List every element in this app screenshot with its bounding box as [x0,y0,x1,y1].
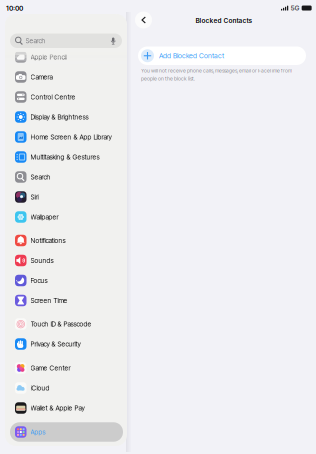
button[interactable]: Wallet & Apple Pay [10,398,123,418]
button[interactable]: Game Center [10,358,123,378]
staticText: Game Center [30,364,70,372]
button[interactable]: Screen Time [10,291,123,310]
staticText: Display & Brightness [30,113,88,121]
staticText: 5G [290,4,299,12]
button[interactable]: Apple Pencil [10,47,123,67]
button[interactable]: Search [10,33,122,48]
staticText: people on the block list. [141,75,195,82]
staticText: Notifications [30,236,65,245]
staticText: Focus [30,276,47,285]
staticText: Wallpaper [30,213,58,221]
staticText: Add Blocked Contact [159,52,224,60]
staticText: Control Centre [30,93,75,101]
button[interactable]: Display & Brightness [10,107,123,127]
staticText: Apps [30,428,45,436]
staticText: Camera [30,73,52,81]
button[interactable]: Search [10,167,123,187]
staticText: Screen Time [30,296,67,305]
button[interactable]: Focus [10,271,123,290]
button[interactable]: Camera [10,67,123,87]
staticText: iCloud [30,384,49,392]
staticText: Apple Pencil [30,53,66,61]
button[interactable]: Home Screen & App Library [10,127,123,147]
staticText: Touch ID & Passcode [30,320,91,328]
staticText: You will not receive phone calls, messag… [141,67,292,74]
staticText: Home Screen & App Library [30,133,111,141]
staticText: Privacy & Security [30,340,80,348]
staticText: Blocked Contacts [195,16,252,24]
button[interactable]: Privacy & Security [10,334,123,354]
button[interactable]: Add Blocked Contact [138,46,306,65]
staticText: Search [30,173,50,181]
button[interactable]: Siri [10,187,123,207]
button[interactable]: Touch ID & Passcode [10,314,123,334]
staticText: Sounds [30,256,53,265]
button[interactable]: Wallpaper [10,207,123,227]
button[interactable]: Sounds [10,251,123,270]
staticText: Wallet & Apple Pay [30,404,84,412]
staticText: 10:00 [6,4,23,12]
button[interactable]: Apps [10,422,123,442]
staticText: Siri [30,193,38,201]
button[interactable]: Back [135,11,152,28]
staticText: Search [25,37,45,45]
staticText: Multitasking & Gestures [30,153,99,161]
button[interactable]: Multitasking & Gestures [10,147,123,167]
button[interactable]: iCloud [10,378,123,398]
button[interactable]: Control Centre [10,87,123,107]
button[interactable]: Notifications [10,231,123,250]
